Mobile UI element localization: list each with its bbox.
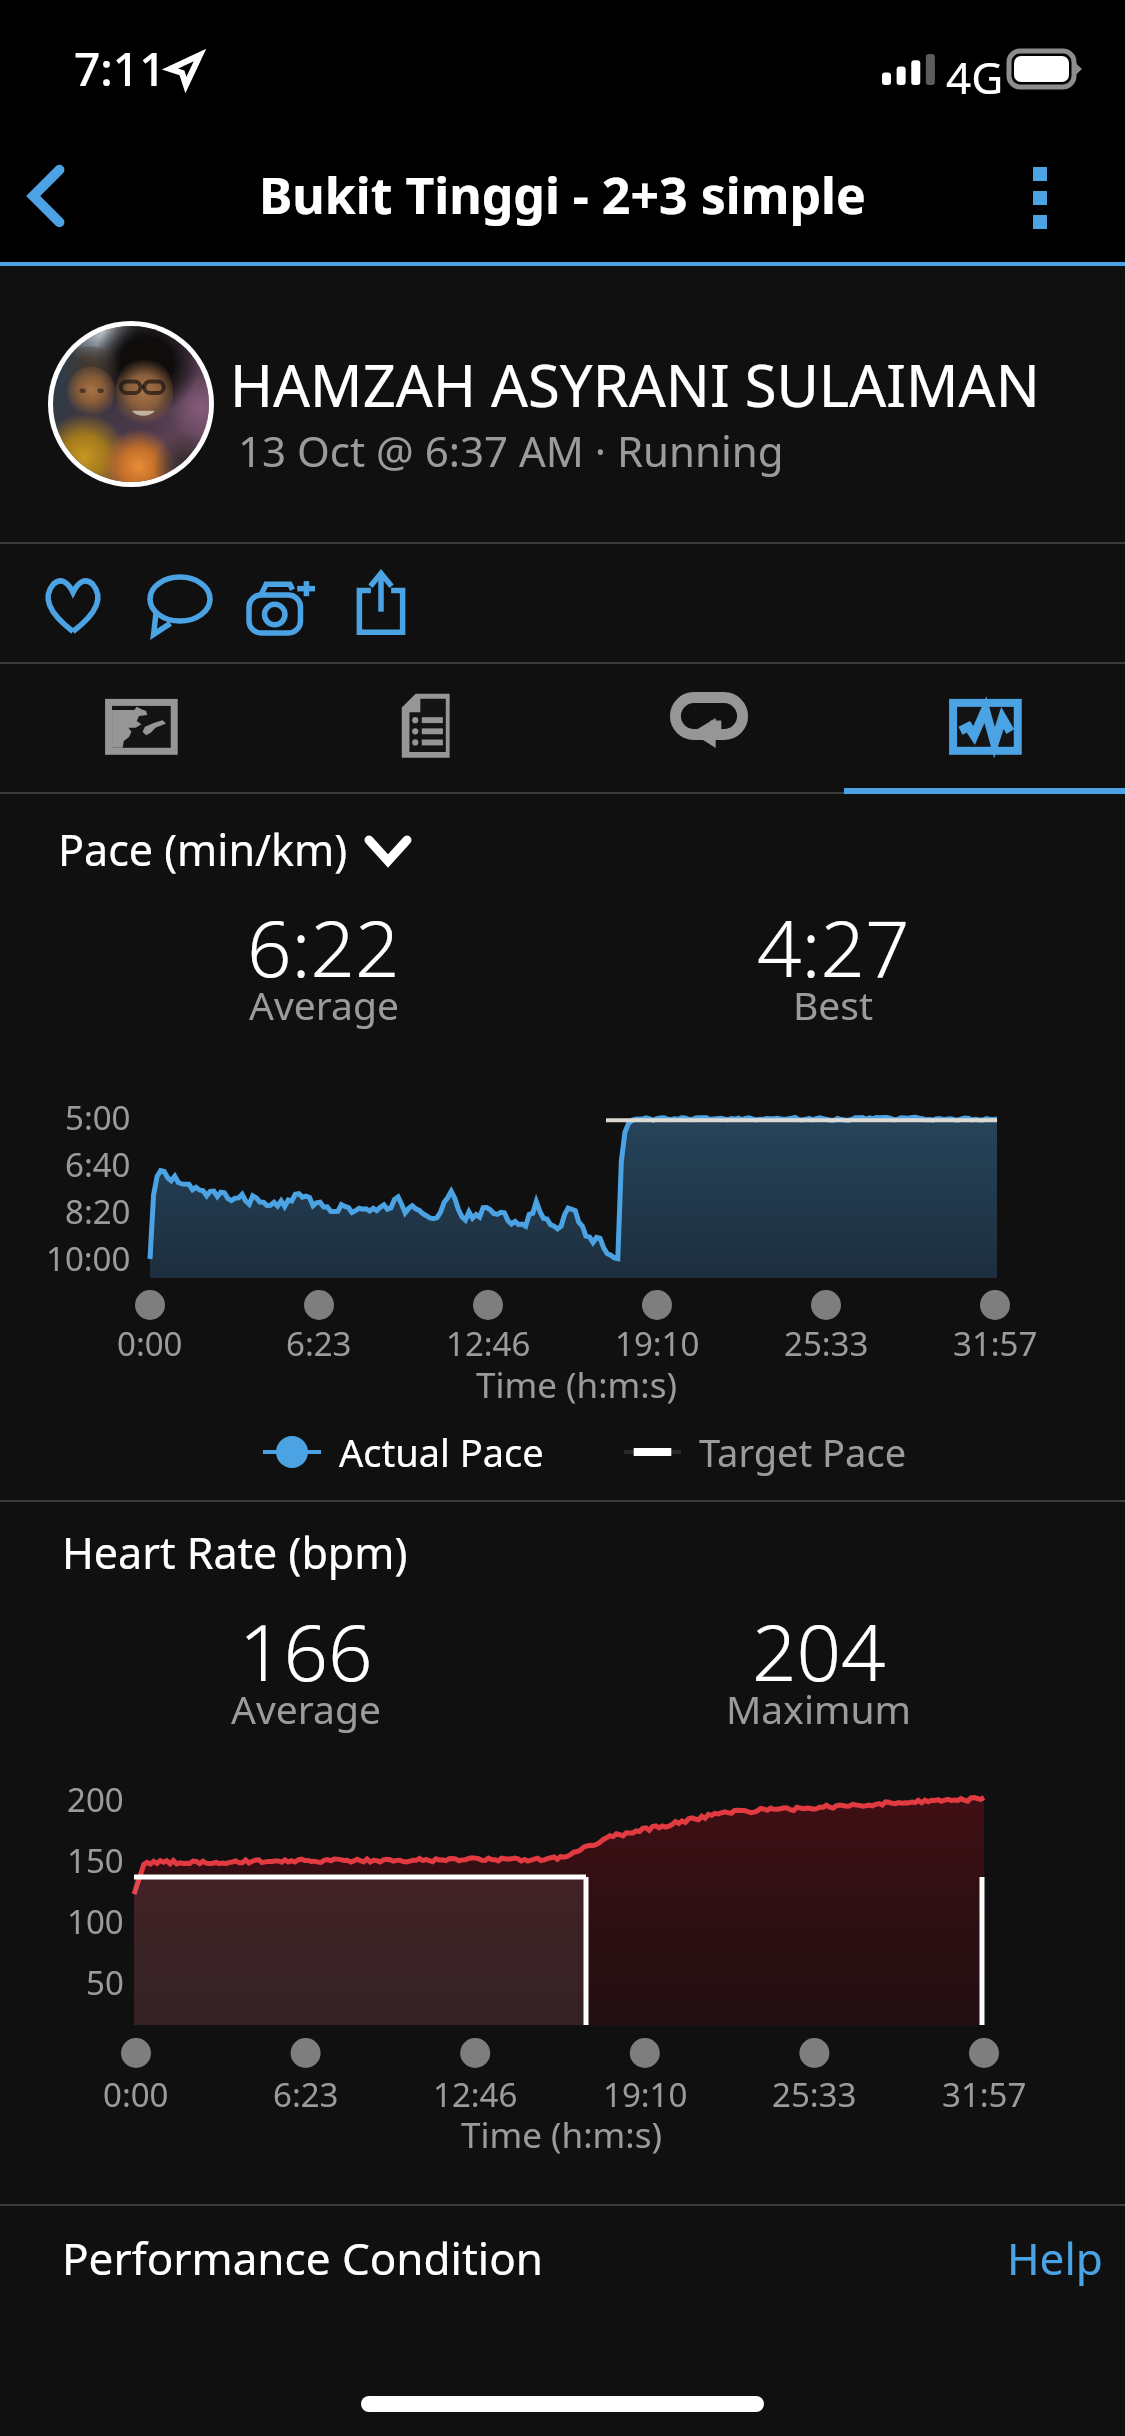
staticText: 25:33: [784, 1321, 869, 1366]
staticText: Time (h:m:s): [461, 2111, 662, 2159]
staticText: HAMZAH ASYRANI SULAIMAN: [230, 345, 1040, 424]
staticText: Actual Pace: [339, 1426, 544, 1478]
button[interactable]: Charts: [844, 664, 1125, 794]
staticText: Performance Condition: [62, 2228, 544, 2288]
button[interactable]: Laps: [563, 664, 844, 794]
staticText: 50: [86, 1960, 124, 2005]
staticText: 166: [239, 1598, 373, 1704]
staticText: 150: [67, 1838, 124, 1883]
staticText: 6:40: [65, 1142, 131, 1187]
button[interactable]: Back: [0, 144, 110, 254]
staticText: 0:00: [117, 1321, 183, 1366]
staticText: Time (h:m:s): [476, 1361, 677, 1409]
staticText: 6:23: [286, 1321, 352, 1366]
staticText: 6:23: [273, 2072, 339, 2117]
button[interactable]: Help: [987, 2206, 1125, 2356]
staticText: 6:22: [247, 894, 400, 1000]
button[interactable]: Add photo: [223, 553, 323, 653]
staticText: 4G: [946, 47, 1004, 107]
button[interactable]: Performance Condition: [0, 2206, 987, 2356]
staticText: Target Pace: [699, 1426, 907, 1478]
button[interactable]: Details: [282, 664, 563, 794]
staticText: 12:46: [446, 1321, 531, 1366]
staticText: Pace (min/km): [58, 820, 348, 879]
button[interactable]: Comment: [123, 553, 223, 653]
staticText: Best: [793, 978, 874, 1031]
staticText: Average: [231, 1682, 381, 1735]
staticText: Bukit Tinggi - 2+3 simple: [259, 161, 866, 229]
staticText: 7:11: [74, 37, 166, 100]
staticText: 19:10: [615, 1321, 700, 1366]
staticText: 100: [67, 1899, 124, 1944]
staticText: 25:33: [772, 2072, 857, 2117]
button[interactable]: Share: [323, 553, 423, 653]
staticText: 0:00: [103, 2072, 169, 2117]
staticText: 204: [752, 1598, 886, 1704]
staticText: 8:20: [65, 1189, 131, 1234]
button[interactable]: Map: [0, 664, 282, 794]
staticText: Help: [1007, 2228, 1103, 2288]
staticText: 31:57: [953, 1321, 1038, 1366]
staticText: 12:46: [433, 2072, 518, 2117]
staticText: 13 Oct @ 6:37 AM · Running: [238, 422, 784, 479]
staticText: Average: [249, 978, 399, 1031]
button[interactable]: Change metric: [360, 822, 416, 878]
staticText: 19:10: [603, 2072, 688, 2117]
staticText: 31:57: [942, 2072, 1027, 2117]
button[interactable]: More options: [1009, 149, 1109, 249]
button[interactable]: Like: [23, 553, 123, 653]
button[interactable]: HAMZAH ASYRANI SULAIMAN: [0, 266, 1125, 542]
staticText: 10:00: [46, 1236, 131, 1281]
staticText: 200: [67, 1777, 124, 1822]
staticText: Heart Rate (bpm): [62, 1523, 408, 1582]
staticText: 4:27: [757, 894, 910, 1000]
staticText: Maximum: [726, 1682, 911, 1735]
staticText: 5:00: [65, 1095, 131, 1140]
